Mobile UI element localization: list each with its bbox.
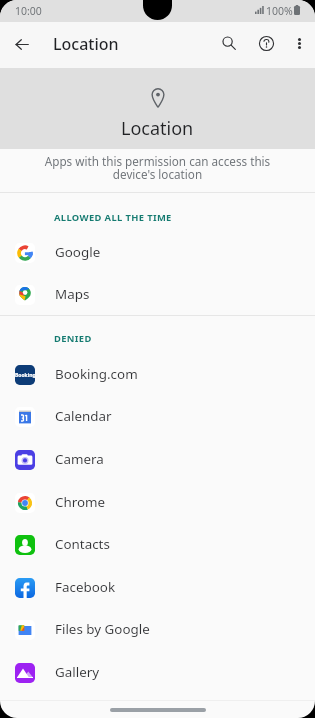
staticText: Calendar xyxy=(55,407,112,425)
staticText: Maps xyxy=(55,285,90,303)
staticText: 10:00 xyxy=(15,4,42,18)
button[interactable]: Google xyxy=(0,232,315,274)
button[interactable]: Calendar xyxy=(0,396,315,438)
button[interactable]: Files by Google xyxy=(0,609,315,651)
staticText: Apps with this permission can access thi… xyxy=(36,153,279,182)
staticText: Chrome xyxy=(55,493,106,511)
button[interactable]: Maps xyxy=(0,274,315,315)
button[interactable]: Camera xyxy=(0,438,315,481)
staticText: Booking xyxy=(15,372,35,379)
staticText: Contacts xyxy=(55,535,110,553)
button[interactable]: Chrome xyxy=(0,481,315,524)
button[interactable]: Booking xyxy=(0,353,315,396)
staticText: Camera xyxy=(55,450,104,468)
button[interactable]: Back xyxy=(0,22,43,66)
staticText: 100% xyxy=(266,4,293,18)
staticText: Files by Google xyxy=(55,620,150,638)
button[interactable]: Help xyxy=(247,22,285,64)
button[interactable]: More options xyxy=(285,22,314,65)
button[interactable]: Search xyxy=(209,22,248,64)
staticText: Location xyxy=(53,33,119,55)
staticText: Booking.com xyxy=(55,365,138,383)
button[interactable]: Facebook xyxy=(0,566,315,609)
staticText: Gallery xyxy=(55,663,100,681)
staticText: Facebook xyxy=(55,578,116,596)
button[interactable]: Contacts xyxy=(0,524,315,566)
button[interactable]: Gallery xyxy=(0,651,315,694)
staticText: ALLOWED ALL THE TIME xyxy=(54,211,172,224)
staticText: Google xyxy=(55,243,101,261)
staticText: DENIED xyxy=(54,332,92,345)
staticText: Location xyxy=(121,116,194,141)
